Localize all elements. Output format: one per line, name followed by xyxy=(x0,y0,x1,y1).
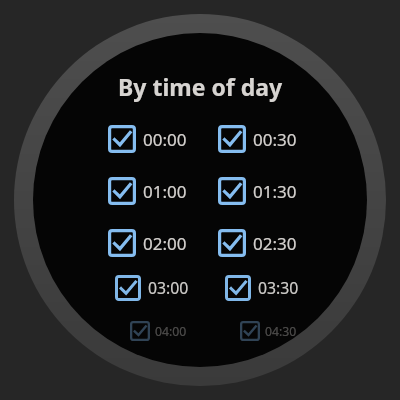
staticText: 01:00 xyxy=(143,180,187,203)
staticText: By time of day xyxy=(118,71,283,102)
staticText: 04:00 xyxy=(155,323,187,340)
staticText: 03:30 xyxy=(258,277,299,299)
staticText: 00:30 xyxy=(253,128,297,151)
button[interactable]: Toggle 00:30 xyxy=(218,125,297,153)
staticText: 01:30 xyxy=(253,180,297,203)
staticText: 04:30 xyxy=(265,323,297,340)
button[interactable]: Toggle 04:30 xyxy=(240,321,297,341)
staticText: 02:30 xyxy=(253,232,297,255)
button[interactable]: Toggle 03:30 xyxy=(225,275,299,301)
button[interactable]: Toggle 04:00 xyxy=(130,321,187,341)
button[interactable]: Toggle 00:00 xyxy=(108,125,187,153)
button[interactable]: Toggle 03:00 xyxy=(115,275,189,301)
staticText: 02:00 xyxy=(143,232,187,255)
staticText: 00:00 xyxy=(143,128,187,151)
button[interactable]: Toggle 01:00 xyxy=(108,177,187,205)
button[interactable]: Toggle 02:00 xyxy=(108,229,187,257)
button[interactable]: Toggle 02:30 xyxy=(218,229,297,257)
staticText: 03:00 xyxy=(148,277,189,299)
button[interactable]: Toggle 01:30 xyxy=(218,177,297,205)
